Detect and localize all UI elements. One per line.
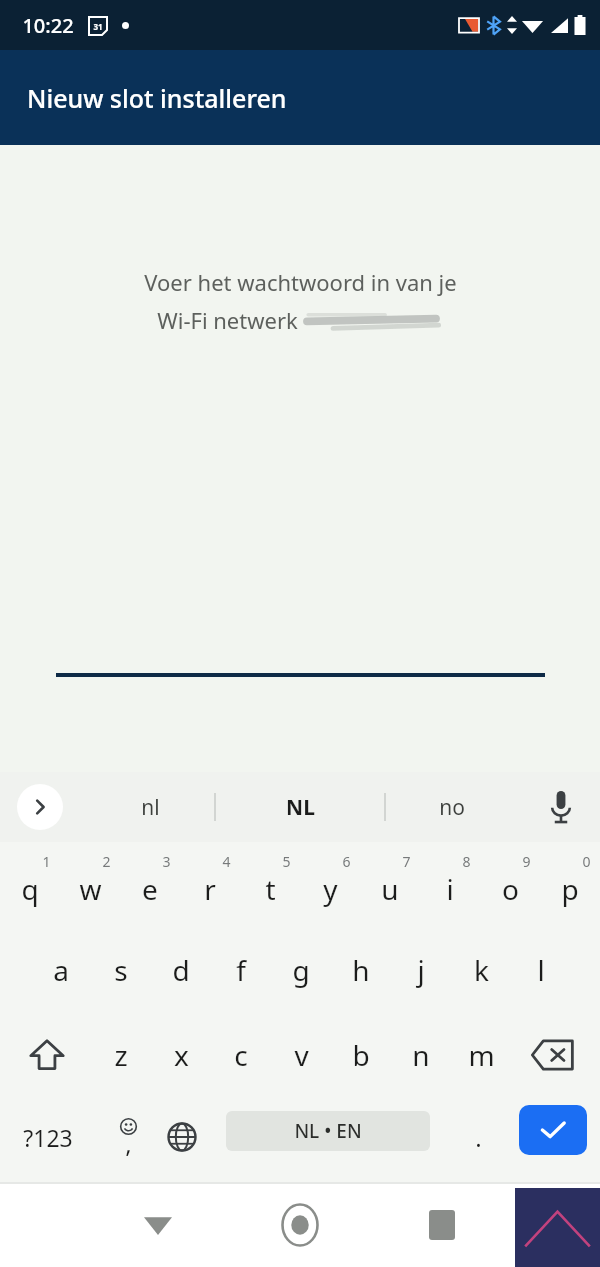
staticText: 8 xyxy=(462,852,471,871)
button[interactable]: k xyxy=(451,927,511,1012)
button[interactable]: a xyxy=(31,927,91,1012)
staticText: Nieuw slot installeren xyxy=(27,81,287,115)
staticText: j xyxy=(417,951,425,989)
staticText: a xyxy=(53,951,69,989)
staticText: v xyxy=(294,1036,309,1074)
button[interactable]: 7 xyxy=(360,842,420,927)
staticText: n xyxy=(412,1036,430,1074)
staticText: f xyxy=(236,951,246,989)
staticText: z xyxy=(114,1036,128,1074)
button[interactable]: 9 xyxy=(480,842,540,927)
staticText: p xyxy=(561,870,579,908)
button[interactable]: NL xyxy=(217,772,383,842)
staticText: q xyxy=(21,870,39,908)
button[interactable]: Emoji xyxy=(96,1097,160,1177)
button[interactable]: f xyxy=(211,927,271,1012)
staticText: y xyxy=(323,870,338,908)
button[interactable]: b xyxy=(331,1012,391,1097)
button[interactable]: j xyxy=(391,927,451,1012)
button[interactable]: no xyxy=(387,772,517,842)
staticText: i xyxy=(446,870,454,908)
staticText: 4 xyxy=(222,852,231,871)
staticText: no xyxy=(439,793,465,822)
button[interactable]: . xyxy=(446,1097,510,1177)
staticText: m xyxy=(468,1036,495,1074)
staticText: e xyxy=(142,870,158,908)
button[interactable]: 6 xyxy=(300,842,360,927)
button[interactable]: g xyxy=(271,927,331,1012)
button[interactable]: 1 xyxy=(0,842,60,927)
button[interactable]: x xyxy=(151,1012,211,1097)
staticText: . xyxy=(475,1121,482,1154)
staticText: t xyxy=(265,870,276,908)
button[interactable]: 5 xyxy=(240,842,300,927)
staticText: x xyxy=(174,1036,189,1074)
button[interactable]: NL • EN xyxy=(226,1111,430,1151)
button[interactable]: c xyxy=(211,1012,271,1097)
staticText: 7 xyxy=(402,852,411,871)
staticText: 2 xyxy=(102,852,111,871)
button[interactable]: nl xyxy=(88,772,212,842)
staticText: Voer het wachtwoord in van je xyxy=(144,267,457,297)
button[interactable]: z xyxy=(91,1012,151,1097)
staticText: w xyxy=(79,870,102,908)
staticText: 10:22 xyxy=(22,12,74,39)
staticText: 9 xyxy=(522,852,531,871)
button[interactable]: h xyxy=(331,927,391,1012)
staticText: NL xyxy=(286,793,315,822)
staticText: 6 xyxy=(342,852,351,871)
button[interactable]: 2 xyxy=(60,842,120,927)
staticText: ?123 xyxy=(23,1122,73,1153)
button[interactable]: ?123 xyxy=(0,1097,96,1177)
staticText: 1 xyxy=(42,852,51,871)
button[interactable]: Hide keyboard xyxy=(118,1182,198,1267)
staticText: c xyxy=(234,1036,248,1074)
staticText: u xyxy=(381,870,399,908)
button[interactable]: Overlay bubble xyxy=(515,1188,600,1267)
button[interactable]: Nieuw slot installeren xyxy=(27,81,287,115)
staticText: s xyxy=(114,951,128,989)
button[interactable]: Enter xyxy=(519,1105,587,1155)
staticText: r xyxy=(204,870,216,908)
button[interactable]: Shift xyxy=(12,1012,82,1097)
button[interactable]: 8 xyxy=(420,842,480,927)
staticText: Wi-Fi netwerk xyxy=(154,305,301,335)
staticText: 0 xyxy=(582,852,591,871)
button[interactable]: n xyxy=(391,1012,451,1097)
button[interactable]: v xyxy=(271,1012,331,1097)
button[interactable]: Home xyxy=(260,1182,340,1267)
button[interactable]: Change language xyxy=(150,1097,214,1177)
staticText: , xyxy=(125,1127,132,1160)
button[interactable]: Recent apps xyxy=(402,1182,482,1267)
staticText: nl xyxy=(141,793,160,822)
button[interactable]: Expand toolbar xyxy=(17,784,63,830)
staticText: NL • EN xyxy=(294,1118,362,1144)
button[interactable]: 4 xyxy=(180,842,240,927)
staticText: o xyxy=(502,870,519,908)
staticText: 3 xyxy=(162,852,171,871)
button[interactable]: l xyxy=(511,927,571,1012)
button[interactable]: Voice input xyxy=(528,772,594,842)
button[interactable]: d xyxy=(151,927,211,1012)
staticText: d xyxy=(172,951,190,989)
button[interactable]: 3 xyxy=(120,842,180,927)
staticText: g xyxy=(292,951,310,989)
button[interactable]: m xyxy=(451,1012,511,1097)
staticText: k xyxy=(474,951,489,989)
staticText: h xyxy=(352,951,370,989)
staticText: b xyxy=(352,1036,370,1074)
staticText: l xyxy=(537,951,545,989)
button[interactable]: 0 xyxy=(540,842,600,927)
button[interactable]: s xyxy=(91,927,151,1012)
button[interactable]: Backspace xyxy=(518,1012,588,1097)
staticText: 5 xyxy=(282,852,291,871)
staticText: 31 xyxy=(93,21,103,32)
